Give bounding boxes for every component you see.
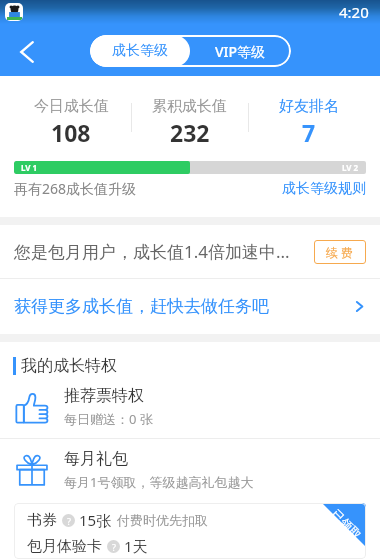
button[interactable]: 推荐票特权 — [0, 376, 380, 438]
staticText: 每月1号领取，等级越高礼包越大 — [64, 473, 254, 491]
staticText: 书券 — [27, 511, 57, 530]
staticText: 好友排名 — [279, 97, 339, 116]
staticText: VIP等级 — [215, 42, 266, 61]
staticText: 我的成长特权 — [21, 356, 117, 376]
button[interactable]: 您是包月用户，成长值1.4倍加速中... — [0, 225, 380, 278]
staticText: 今日成长值 — [34, 97, 109, 116]
staticText: 成长等级 — [112, 42, 168, 60]
staticText: 4:20 — [339, 2, 369, 22]
staticText: 成长等级规则 — [282, 180, 366, 198]
staticText: ? — [67, 515, 71, 527]
staticText: 1天 — [124, 536, 148, 556]
staticText: 获得更多成长值，赶快去做任务吧 — [14, 296, 269, 317]
staticText: 您是包月用户，成长值1.4倍加速中... — [14, 240, 290, 263]
staticText: 续 费 — [326, 244, 354, 260]
button[interactable]: 续 费 — [314, 240, 366, 264]
staticText: 推荐票特权 — [64, 386, 144, 406]
button[interactable]: 好友排名 — [249, 76, 368, 161]
staticText: 每月礼包 — [64, 449, 128, 469]
button[interactable]: 每月礼包 — [0, 439, 380, 501]
button[interactable]: 成长等级 — [90, 35, 190, 67]
staticText: 付费时优先扣取 — [117, 512, 208, 528]
staticText: 再有268成长值升级 — [14, 179, 137, 198]
staticText: LV 1 — [21, 162, 38, 173]
staticText: 7 — [302, 117, 316, 148]
staticText: 包月体验卡 — [27, 537, 102, 556]
staticText: LV 2 — [342, 162, 359, 173]
button[interactable]: 今日成长值 — [12, 76, 130, 161]
staticText: 232 — [170, 117, 210, 148]
staticText: 已领取 — [329, 506, 365, 542]
button[interactable]: 获得更多成长值，赶快去做任务吧 — [0, 279, 380, 334]
staticText: 108 — [51, 117, 91, 148]
staticText: 每日赠送：0 张 — [64, 410, 153, 428]
button[interactable]: Back — [6, 31, 47, 72]
staticText: 15张 — [79, 510, 112, 530]
button[interactable]: VIP等级 — [190, 35, 291, 67]
staticText: ? — [112, 541, 116, 553]
button[interactable]: 累积成长值 — [130, 76, 249, 161]
staticText: 累积成长值 — [152, 97, 227, 116]
button[interactable]: 成长等级规则 — [282, 180, 366, 198]
